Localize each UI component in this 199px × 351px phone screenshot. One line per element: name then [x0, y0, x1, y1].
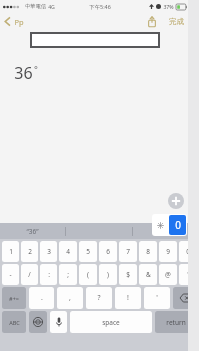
staticText: @: [165, 270, 171, 279]
staticText: “36”: [26, 227, 39, 236]
button[interactable]: !: [115, 287, 141, 309]
button[interactable]: 9: [159, 241, 177, 262]
button[interactable]: ': [144, 287, 170, 309]
button[interactable]: 0: [169, 215, 186, 235]
button[interactable]: space: [70, 311, 152, 333]
staticText: ): [107, 270, 109, 279]
button[interactable]: ,: [57, 287, 83, 309]
button[interactable]: “36”: [0, 223, 65, 239]
staticText: ,: [69, 293, 71, 303]
staticText: 8: [146, 247, 150, 256]
button[interactable]: ?: [86, 287, 112, 309]
button[interactable]: ABC: [2, 311, 26, 333]
staticText: space: [102, 318, 120, 327]
staticText: !: [127, 293, 129, 303]
button[interactable]: return: [155, 311, 197, 333]
button[interactable]: [30, 32, 160, 48]
button[interactable]: 1: [2, 241, 19, 262]
staticText: 1: [9, 247, 13, 256]
staticText: 6: [106, 247, 110, 256]
staticText: :: [48, 270, 50, 279]
staticText: 36: [14, 62, 33, 84]
staticText: #+=: [9, 295, 19, 302]
staticText: -: [9, 270, 12, 279]
staticText: &: [146, 270, 151, 279]
staticText: ": [187, 270, 190, 279]
button[interactable]: 4: [59, 241, 77, 262]
button[interactable]: -: [2, 264, 19, 285]
button[interactable]: Backspace: [173, 287, 197, 309]
button[interactable]: 7: [119, 241, 137, 262]
button[interactable]: Add: [168, 193, 184, 209]
staticText: °: [34, 63, 38, 75]
button[interactable]: .: [29, 287, 54, 309]
staticText: 中華電信: [25, 3, 46, 10]
staticText: ': [156, 293, 158, 303]
button[interactable]: Pp: [0, 14, 30, 29]
button[interactable]: 完成: [167, 15, 186, 28]
staticText: 0: [186, 247, 190, 256]
staticText: 4G: [48, 3, 55, 10]
staticText: $: [126, 270, 130, 279]
button[interactable]: &: [139, 264, 157, 285]
button[interactable]: @: [159, 264, 177, 285]
button[interactable]: ;: [59, 264, 77, 285]
button[interactable]: Change keyboard: [29, 311, 47, 333]
button[interactable]: (: [79, 264, 97, 285]
staticText: .: [41, 293, 43, 303]
staticText: 3: [47, 247, 51, 256]
staticText: ?: [97, 293, 101, 303]
button[interactable]: 2: [21, 241, 38, 262]
staticText: 7: [126, 247, 130, 256]
button[interactable]: 3: [40, 241, 57, 262]
staticText: 2: [28, 247, 32, 256]
button[interactable]: /: [21, 264, 38, 285]
button[interactable]: 5: [79, 241, 97, 262]
button[interactable]: :: [40, 264, 57, 285]
staticText: Pp: [14, 17, 24, 27]
button[interactable]: ": [179, 264, 197, 285]
button[interactable]: #+=: [2, 287, 26, 309]
button[interactable]: 8: [139, 241, 157, 262]
staticText: 下午5:46: [89, 3, 111, 10]
staticText: return: [166, 318, 186, 327]
button[interactable]: Dictation: [50, 311, 67, 333]
staticText: 0: [175, 218, 181, 232]
staticText: ABC: [9, 319, 20, 326]
staticText: (: [87, 270, 89, 279]
staticText: 4: [66, 247, 70, 256]
staticText: 37%: [163, 3, 174, 10]
button[interactable]: 0: [179, 241, 197, 262]
button[interactable]: 6: [99, 241, 117, 262]
staticText: 完成: [169, 17, 184, 26]
staticText: 9: [166, 247, 170, 256]
button[interactable]: ): [99, 264, 117, 285]
button[interactable]: [133, 223, 199, 239]
staticText: /: [28, 270, 31, 279]
button[interactable]: $: [119, 264, 137, 285]
staticText: 5: [86, 247, 90, 256]
staticText: ;: [67, 270, 69, 279]
button[interactable]: Share: [145, 13, 159, 30]
